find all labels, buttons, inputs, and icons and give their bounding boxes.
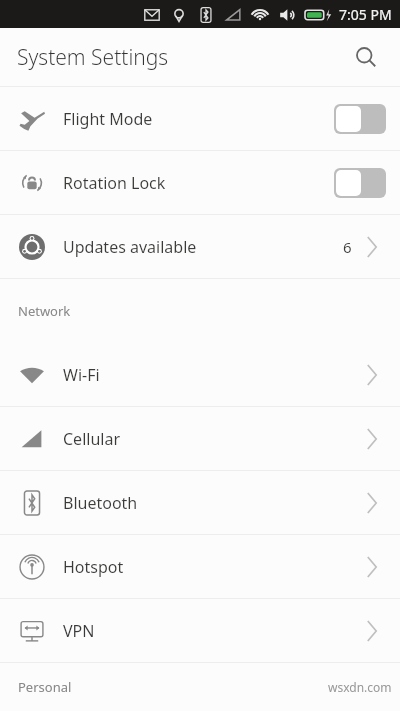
staticText: Hotspot [63,556,366,578]
staticText: Rotation Lock [63,172,334,194]
staticText: Updates available [63,236,343,258]
staticText: Bluetooth [63,492,366,514]
button[interactable]: Toggle [334,168,386,198]
button[interactable]: Search [344,35,388,79]
staticText: Flight Mode [63,108,334,130]
staticText: wsxdn.com [328,679,392,695]
button[interactable]: Hotspot [0,535,400,598]
button[interactable]: Flight Mode [0,87,400,150]
staticText: 6 [343,237,352,257]
staticText: VPN [63,620,366,642]
staticText: 7:05 PM [339,5,392,24]
staticText: Personal [18,678,72,696]
button[interactable]: Updates available [0,215,400,278]
button[interactable]: Toggle [334,104,386,134]
button[interactable]: Cellular [0,407,400,470]
button[interactable]: VPN [0,599,400,662]
button[interactable]: Bluetooth [0,471,400,534]
staticText: System Settings [17,43,169,72]
button[interactable]: Rotation Lock [0,151,400,214]
staticText: Cellular [63,428,366,450]
staticText: Network [18,302,71,320]
staticText: Wi-Fi [63,364,366,386]
button[interactable]: Wi-Fi [0,343,400,406]
